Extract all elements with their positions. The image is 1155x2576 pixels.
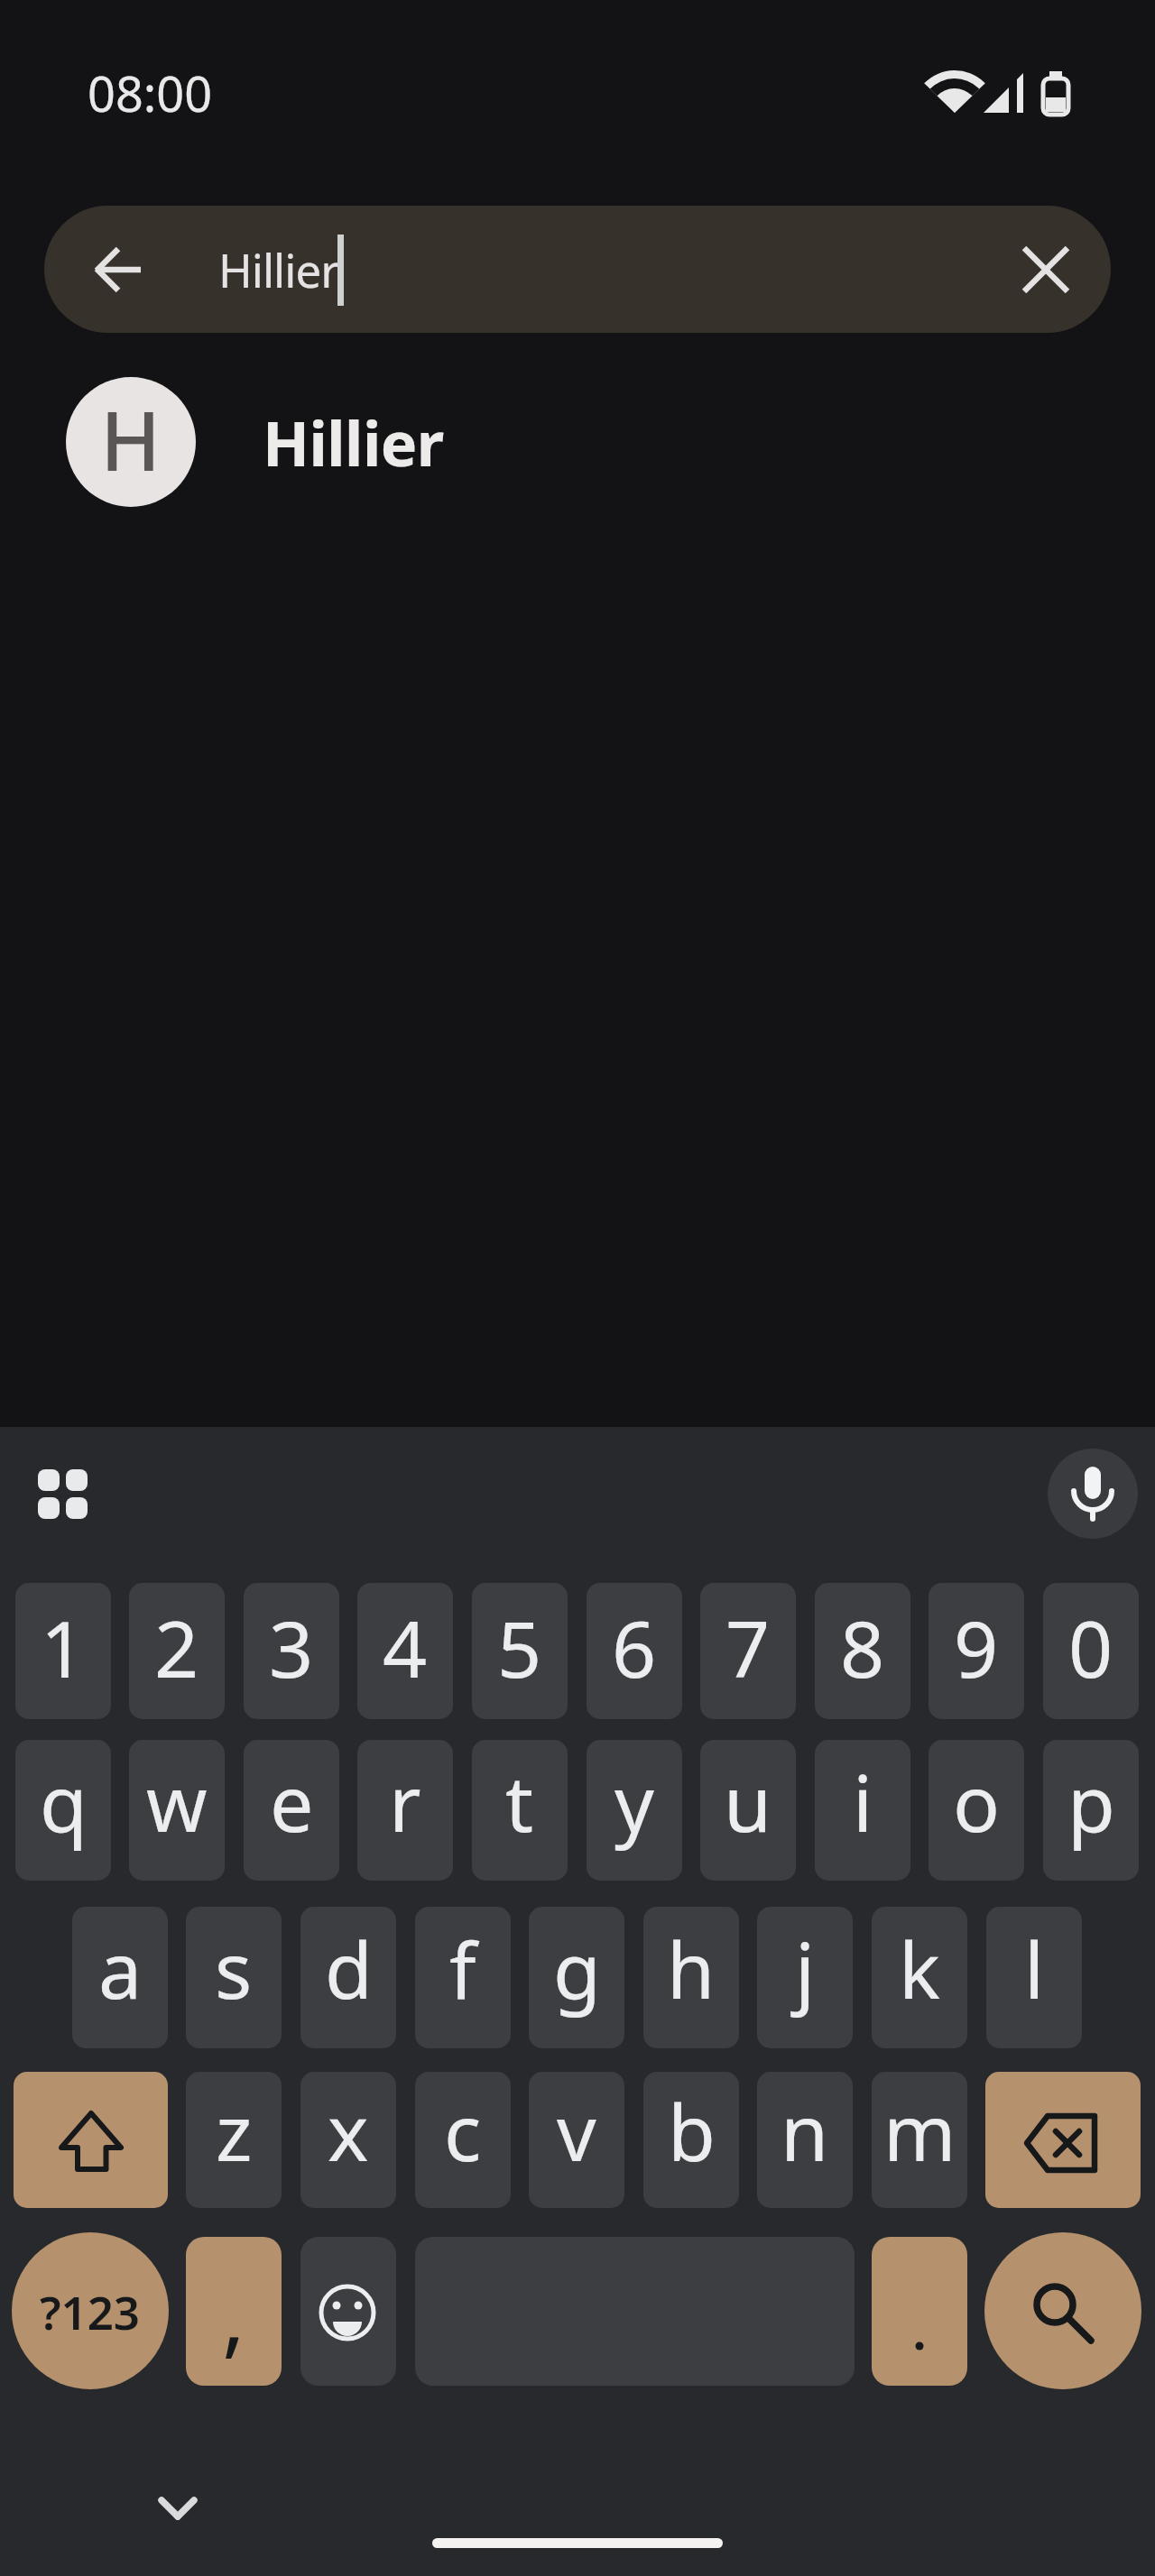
button[interactable]: y: [587, 1740, 682, 1881]
button[interactable]: t: [472, 1740, 568, 1881]
staticText: u: [724, 1749, 772, 1854]
staticText: 9: [954, 1595, 999, 1700]
button[interactable]: n: [757, 2072, 853, 2208]
staticText: 1: [41, 1595, 86, 1700]
staticText: Hillier: [263, 400, 444, 484]
button[interactable]: 1: [15, 1583, 111, 1719]
staticText: t: [505, 1749, 534, 1854]
button[interactable]: k: [872, 1907, 967, 2048]
staticText: s: [215, 1916, 253, 2021]
button[interactable]: [300, 2237, 396, 2386]
button[interactable]: 3: [244, 1583, 339, 1719]
button[interactable]: l: [986, 1907, 1082, 2048]
button[interactable]: ,: [186, 2237, 282, 2386]
button[interactable]: d: [300, 1907, 396, 2048]
button[interactable]: p: [1043, 1740, 1139, 1881]
staticText: 4: [383, 1595, 428, 1700]
button[interactable]: 5: [472, 1583, 568, 1719]
button[interactable]: ?123: [12, 2232, 169, 2389]
button[interactable]: m: [872, 2072, 967, 2208]
staticText: j: [795, 1916, 816, 2021]
staticText: e: [270, 1749, 314, 1854]
button[interactable]: 2: [129, 1583, 225, 1719]
button[interactable]: [1048, 1449, 1138, 1539]
staticText: H: [100, 384, 162, 495]
button[interactable]: [872, 2237, 967, 2386]
button[interactable]: j: [757, 1907, 853, 2048]
button[interactable]: s: [186, 1907, 282, 2048]
staticText: q: [40, 1749, 88, 1854]
button[interactable]: 6: [587, 1583, 682, 1719]
button[interactable]: x: [300, 2072, 396, 2208]
staticText: 7: [725, 1595, 771, 1700]
staticText: 5: [497, 1595, 542, 1700]
staticText: a: [98, 1916, 143, 2021]
button[interactable]: q: [15, 1740, 111, 1881]
staticText: v: [557, 2078, 596, 2184]
button[interactable]: o: [929, 1740, 1024, 1881]
staticText: 0: [1068, 1595, 1113, 1700]
button[interactable]: a: [72, 1907, 168, 2048]
staticText: n: [781, 2078, 829, 2184]
button[interactable]: e: [244, 1740, 339, 1881]
staticText: c: [444, 2078, 482, 2184]
staticText: x: [328, 2078, 369, 2184]
button[interactable]: v: [529, 2072, 624, 2208]
button[interactable]: h: [643, 1907, 739, 2048]
staticText: 8: [840, 1595, 885, 1700]
staticText: g: [553, 1916, 601, 2021]
button[interactable]: z: [186, 2072, 282, 2208]
staticText: d: [325, 1916, 373, 2021]
button[interactable]: u: [700, 1740, 796, 1881]
button[interactable]: g: [529, 1907, 624, 2048]
staticText: ?123: [40, 2280, 141, 2342]
staticText: 3: [269, 1595, 314, 1700]
staticText: h: [667, 1916, 716, 2021]
staticText: Hillier: [218, 238, 339, 300]
staticText: k: [899, 1916, 940, 2021]
button[interactable]: i: [815, 1740, 910, 1881]
staticText: m: [883, 2078, 956, 2184]
staticText: 6: [612, 1595, 657, 1700]
staticText: z: [216, 2078, 253, 2184]
staticText: 2: [154, 1595, 199, 1700]
staticText: l: [1024, 1916, 1045, 2021]
button[interactable]: [14, 2072, 168, 2208]
button[interactable]: 7: [700, 1583, 796, 1719]
button[interactable]: [984, 2232, 1141, 2389]
button[interactable]: 9: [929, 1583, 1024, 1719]
staticText: y: [614, 1749, 654, 1854]
staticText: p: [1067, 1749, 1115, 1854]
staticText: w: [146, 1749, 208, 1854]
staticText: i: [853, 1749, 873, 1854]
button[interactable]: c: [415, 2072, 511, 2208]
button[interactable]: Hillier: [44, 206, 1111, 333]
button[interactable]: [985, 2072, 1141, 2208]
button[interactable]: [27, 1458, 99, 1530]
staticText: f: [449, 1916, 476, 2021]
button[interactable]: b: [643, 2072, 739, 2208]
staticText: 08:00: [88, 60, 213, 115]
button[interactable]: 0: [1043, 1583, 1139, 1719]
button[interactable]: r: [357, 1740, 453, 1881]
staticText: b: [668, 2078, 716, 2184]
staticText: o: [953, 1749, 1001, 1854]
button[interactable]: f: [415, 1907, 511, 2048]
button[interactable]: 4: [357, 1583, 453, 1719]
staticText: r: [389, 1749, 421, 1854]
button[interactable]: H: [0, 365, 1155, 519]
staticText: ,: [222, 2254, 245, 2372]
button[interactable]: w: [129, 1740, 225, 1881]
button[interactable]: 8: [815, 1583, 910, 1719]
